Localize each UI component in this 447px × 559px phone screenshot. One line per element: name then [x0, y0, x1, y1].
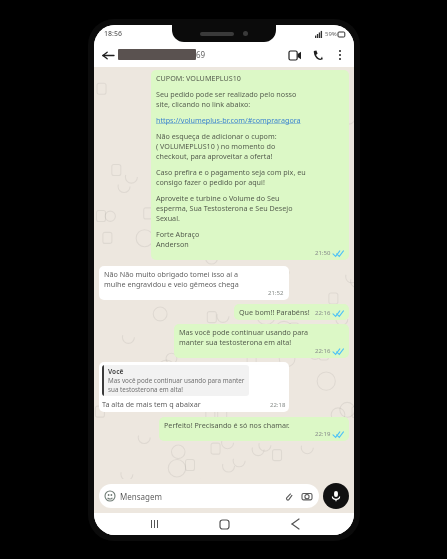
button[interactable]: Perfeito! Precisando é só nos chamar. — [159, 417, 349, 441]
button[interactable]: Mas você pode continuar usando para mant… — [174, 324, 349, 358]
staticText: Mas você pode continuar usando para mant… — [108, 376, 245, 394]
button[interactable]: Call — [309, 46, 327, 64]
button[interactable]: Voice message — [323, 483, 349, 509]
staticText: 22:19 — [315, 430, 331, 438]
staticText: Não Não muito obrigado tomei isso aí a m… — [104, 269, 239, 289]
button[interactable]: Back — [284, 513, 306, 535]
button[interactable]: More options — [332, 47, 348, 63]
button[interactable]: Back — [100, 47, 116, 63]
button[interactable]: Attach — [282, 490, 294, 502]
button[interactable]: Home — [213, 513, 235, 535]
button[interactable]: Camera — [301, 490, 313, 502]
staticText: Aproveite e turbine o Volume do Seu espe… — [156, 193, 293, 223]
staticText: Seu pedido pode ser realizado pelo nosso… — [156, 89, 297, 109]
staticText: 22:16 — [315, 347, 331, 355]
staticText: 69 — [196, 49, 206, 60]
staticText: 21:50 — [315, 249, 331, 257]
button[interactable]: Que bom!! Parabéns! — [234, 304, 349, 320]
staticText: 22:16 — [315, 309, 331, 317]
staticText: Mensagem — [120, 491, 162, 502]
staticText: Mas você pode continuar usando para mant… — [179, 327, 309, 347]
button[interactable]: https://volumeplus-br.com/#compraragora — [156, 115, 301, 125]
staticText: Forte Abraço Anderson — [156, 229, 200, 249]
staticText: 21:52 — [268, 289, 284, 297]
staticText: 22:18 — [270, 401, 286, 409]
staticText: Você — [108, 367, 124, 376]
staticText: Caso prefira e o pagamento seja com pix,… — [156, 167, 306, 187]
staticText: Que bom!! Parabéns! — [239, 307, 310, 317]
staticText: CUPOM: VOLUMEPLUS10 — [156, 73, 241, 83]
button[interactable]: CUPOM: VOLUMEPLUS10 — [151, 70, 349, 260]
button[interactable]: Mensagem — [99, 484, 319, 508]
staticText: Não esqueça de adicionar o cupom: ( VOLU… — [156, 131, 277, 161]
button[interactable]: Não Não muito obrigado tomei isso aí a m… — [99, 266, 289, 300]
button[interactable]: Recents — [143, 513, 165, 535]
button[interactable]: Video call — [286, 46, 304, 64]
staticText: 18:56 — [104, 29, 122, 39]
staticText: 59% — [325, 30, 337, 38]
button[interactable]: Você — [99, 362, 289, 412]
staticText: Ta alta de mais tem q abaixar — [102, 399, 201, 409]
staticText: Perfeito! Precisando é só nos chamar. — [164, 420, 290, 430]
